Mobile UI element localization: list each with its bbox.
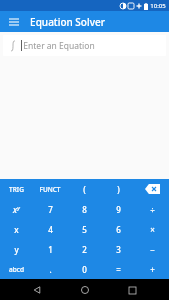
button[interactable]: x [0, 199, 33, 219]
button[interactable]: . [33, 259, 67, 279]
staticText: TRIG [9, 185, 24, 194]
button[interactable]: 0 [67, 259, 101, 279]
button[interactable]: ÷ [135, 199, 169, 219]
staticText: x [13, 204, 17, 215]
staticText: y [14, 244, 19, 255]
staticText: 8 [82, 204, 87, 215]
button[interactable]: ( [67, 179, 101, 199]
staticText: 0 [82, 264, 87, 275]
button[interactable]: FUNCT [33, 179, 67, 199]
staticText: Equation Solver [30, 15, 105, 29]
button[interactable]: 9 [101, 199, 135, 219]
staticText: y [17, 204, 20, 211]
button[interactable]: ) [101, 179, 135, 199]
button[interactable]: x [0, 219, 33, 239]
staticText: abcd [9, 265, 24, 274]
button[interactable]: 3 [101, 239, 135, 259]
button[interactable]: abcd [0, 259, 33, 279]
button[interactable]: 7 [33, 199, 67, 219]
staticText: = [116, 264, 121, 275]
staticText: Enter an Equation [23, 40, 95, 52]
button[interactable]: 1 [33, 239, 67, 259]
staticText: 7 [48, 204, 53, 215]
staticText: FUNCT [39, 185, 61, 194]
button[interactable]: Home [75, 280, 95, 300]
button[interactable]: Back [27, 280, 47, 300]
staticText: x [14, 224, 19, 235]
button[interactable]: Open navigation menu [6, 14, 22, 30]
button[interactable]: Backspace [135, 179, 169, 199]
staticText: 6 [116, 224, 121, 235]
staticText: ) [117, 184, 120, 195]
staticText: 5 [82, 224, 87, 235]
staticText: 4 [48, 224, 53, 235]
staticText: 3 [116, 244, 121, 255]
button[interactable]: = [101, 259, 135, 279]
button[interactable]: Enter an Equation [3, 35, 166, 56]
button[interactable]: 8 [67, 199, 101, 219]
button[interactable]: − [135, 239, 169, 259]
staticText: ( [83, 184, 86, 195]
staticText: 10:05 [150, 2, 166, 10]
staticText: 9 [116, 204, 121, 215]
staticText: 1 [48, 244, 53, 255]
button[interactable]: 4 [33, 219, 67, 239]
staticText: − [150, 244, 155, 255]
button[interactable]: Recent apps [122, 280, 142, 300]
button[interactable]: + [135, 259, 169, 279]
staticText: 2 [82, 244, 87, 255]
button[interactable]: 5 [67, 219, 101, 239]
button[interactable]: × [135, 219, 169, 239]
staticText: + [150, 264, 155, 275]
button[interactable]: 6 [101, 219, 135, 239]
staticText: ÷ [150, 204, 155, 215]
button[interactable]: 2 [67, 239, 101, 259]
button[interactable]: y [0, 239, 33, 259]
staticText: × [150, 224, 155, 235]
button[interactable]: TRIG [0, 179, 33, 199]
staticText: . [49, 264, 52, 275]
